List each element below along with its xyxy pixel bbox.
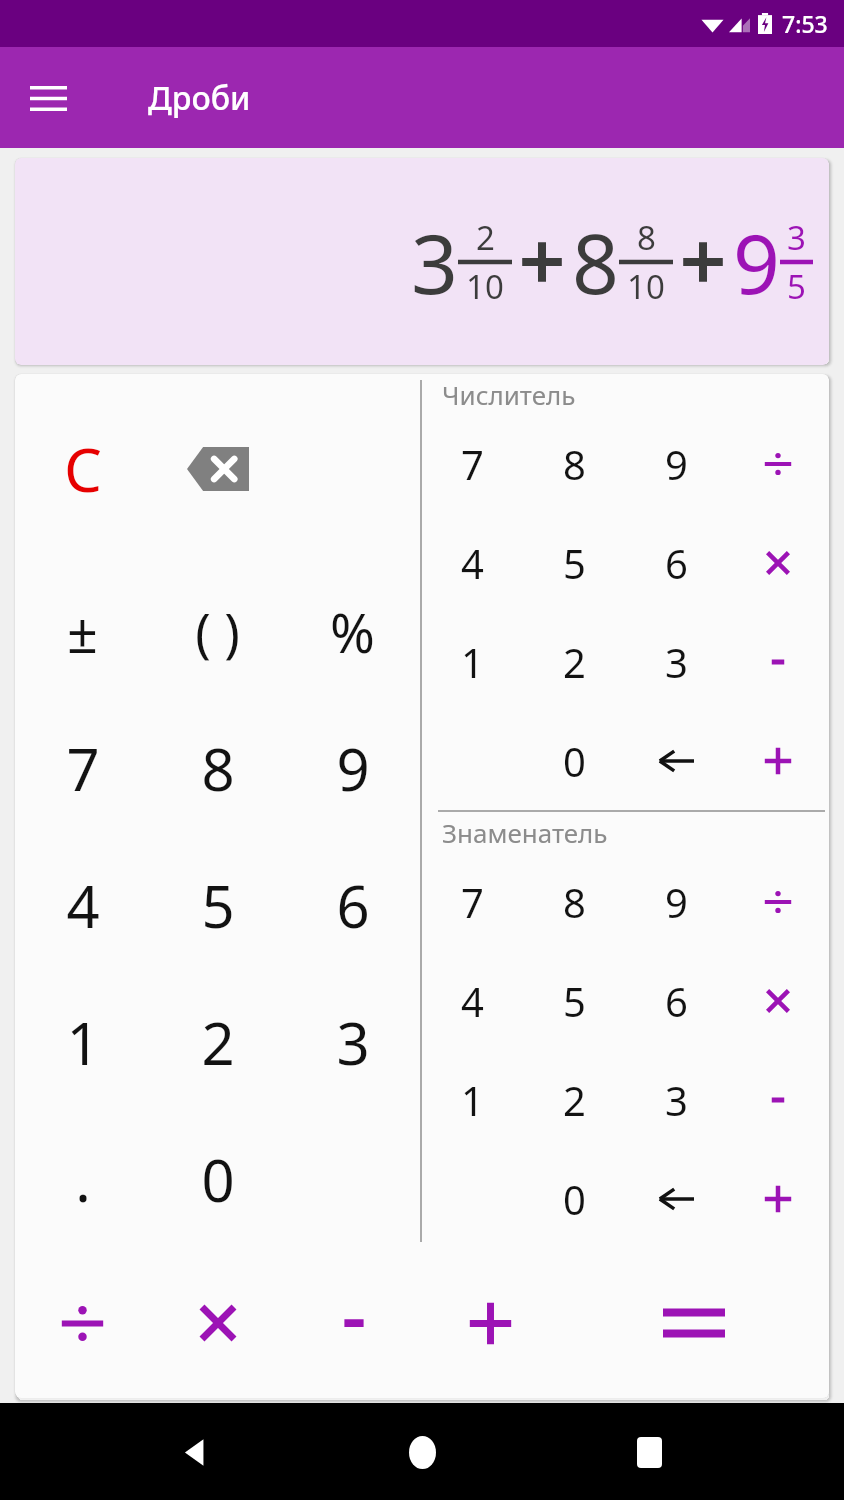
staticText: 1 (66, 1003, 100, 1082)
button[interactable]: 5 (523, 513, 625, 612)
button[interactable]: div (727, 414, 829, 513)
button[interactable]: min (727, 1050, 829, 1149)
button[interactable]: Equals (558, 1248, 829, 1398)
staticText: 3 (336, 1003, 370, 1082)
button[interactable]: 8 (523, 414, 625, 513)
button[interactable]: plus (727, 1149, 829, 1248)
button[interactable]: Menu (20, 70, 76, 126)
button[interactable]: 5 (150, 837, 285, 974)
button[interactable]: 5 (523, 951, 625, 1050)
staticText: 0 (201, 1140, 235, 1219)
button[interactable]: 9 (285, 700, 420, 837)
button[interactable]: . (15, 1111, 150, 1248)
staticText: ± (67, 595, 98, 669)
button[interactable]: 4 (422, 513, 523, 612)
staticText: 2 (476, 215, 495, 260)
staticText: 4 (461, 974, 484, 1028)
staticText: 10 (627, 264, 665, 309)
button[interactable]: 0 (523, 1149, 625, 1248)
staticText: 2 (563, 1073, 586, 1127)
button[interactable]: 1 (422, 612, 523, 711)
staticText: 9 (733, 206, 780, 318)
button[interactable]: 6 (285, 837, 420, 974)
staticText: 1 (461, 635, 484, 689)
button[interactable]: ( ) (150, 563, 285, 700)
staticText: 9 (665, 437, 688, 491)
button[interactable]: 1 (422, 1050, 523, 1149)
staticText: . (75, 1140, 91, 1219)
button[interactable]: Divide (15, 1248, 150, 1398)
button[interactable]: 9 (625, 414, 727, 513)
staticText: 3 (787, 215, 806, 260)
staticText: ( ) (195, 596, 240, 667)
staticText: 2 (201, 1003, 235, 1082)
button[interactable]: mul (727, 951, 829, 1050)
button[interactable]: Backspace (625, 711, 727, 810)
staticText: 5 (787, 264, 806, 309)
button[interactable]: 2 (523, 612, 625, 711)
staticText: 9 (665, 875, 688, 929)
button[interactable]: 3 (625, 612, 727, 711)
button[interactable]: 0 (150, 1111, 285, 1248)
staticText: 5 (563, 974, 586, 1028)
staticText: 8 (201, 729, 235, 808)
button[interactable]: 7 (422, 414, 523, 513)
button[interactable]: 2 (523, 1050, 625, 1149)
button[interactable]: 9 (625, 852, 727, 951)
button[interactable]: Multiply (150, 1248, 286, 1398)
button[interactable]: 7 (15, 700, 150, 837)
staticText: 6 (665, 974, 688, 1028)
button[interactable]: 6 (625, 513, 727, 612)
button[interactable]: % (285, 563, 420, 700)
staticText: 4 (461, 536, 484, 590)
staticText: 10 (466, 264, 504, 309)
staticText: 0 (563, 734, 586, 788)
staticText: Числитель (442, 377, 576, 412)
staticText: 7:53 (782, 8, 828, 39)
staticText: 3 (665, 1073, 688, 1127)
button[interactable]: 0 (523, 711, 625, 810)
button[interactable]: 4 (15, 837, 150, 974)
button[interactable]: plus (727, 711, 829, 810)
staticText: 8 (637, 215, 656, 260)
staticText: 4 (66, 866, 100, 945)
staticText: 7 (461, 437, 484, 491)
staticText: 6 (336, 866, 370, 945)
button[interactable]: Backspace (625, 1149, 727, 1248)
button[interactable]: 8 (150, 700, 285, 837)
button[interactable]: 4 (422, 951, 523, 1050)
button[interactable]: Recents (618, 1421, 680, 1483)
button[interactable]: min (727, 612, 829, 711)
button[interactable]: div (727, 852, 829, 951)
staticText: 3 (665, 635, 688, 689)
button[interactable]: Backspace (150, 374, 285, 563)
button[interactable]: 3 (285, 974, 420, 1111)
staticText: 7 (461, 875, 484, 929)
staticText: Дроби (148, 76, 251, 120)
staticText: 3 (411, 206, 458, 318)
button[interactable]: Back (165, 1421, 227, 1483)
staticText: 2 (563, 635, 586, 689)
staticText: 7 (66, 729, 100, 808)
button[interactable]: 2 (150, 974, 285, 1111)
button[interactable]: C (15, 374, 150, 563)
button[interactable]: Plus (422, 1248, 558, 1398)
staticText: 8 (563, 875, 586, 929)
button[interactable]: mul (727, 513, 829, 612)
button[interactable]: 6 (625, 951, 727, 1050)
button[interactable]: 7 (422, 852, 523, 951)
staticText: 0 (563, 1172, 586, 1226)
staticText: 8 (563, 437, 586, 491)
staticText: Знаменатель (442, 815, 608, 850)
staticText: 5 (201, 866, 235, 945)
button[interactable]: Home (391, 1421, 453, 1483)
staticText: 9 (336, 729, 370, 808)
button[interactable]: 8 (523, 852, 625, 951)
staticText: 6 (665, 536, 688, 590)
button[interactable]: ± (15, 563, 150, 700)
button[interactable]: 1 (15, 974, 150, 1111)
button[interactable]: Minus (286, 1248, 422, 1398)
button[interactable]: 3 (625, 1050, 727, 1149)
